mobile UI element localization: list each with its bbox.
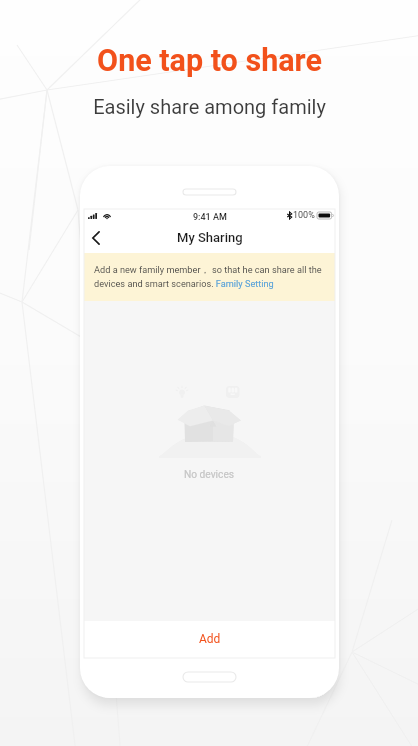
- staticText: One tap to share: [97, 43, 322, 79]
- staticText: 100%: [293, 210, 315, 221]
- staticText: 9:41 AM: [193, 212, 227, 223]
- staticText: My Sharing: [177, 230, 243, 245]
- button[interactable]: Add: [84, 621, 335, 658]
- staticText: No devices: [184, 469, 235, 481]
- staticText: Easily share among family: [93, 95, 326, 118]
- button[interactable]: Back: [85, 227, 107, 249]
- staticText: Add: [199, 632, 221, 646]
- staticText: Add a new family member， so that he can …: [94, 264, 326, 289]
